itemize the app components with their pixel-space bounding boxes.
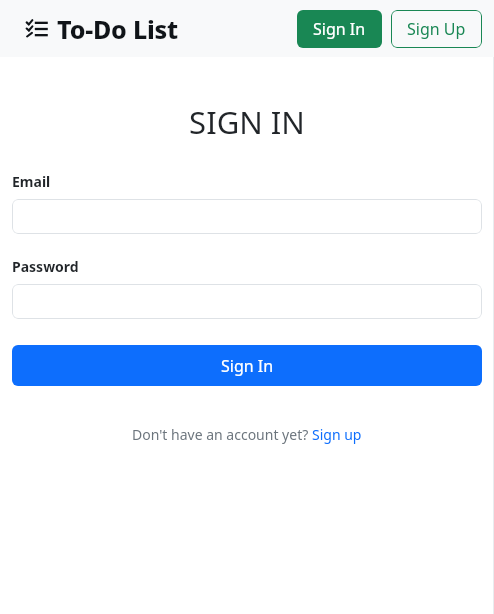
staticText: Sign up [312,425,362,444]
button[interactable]: To-Do List [26,12,179,46]
button[interactable]: Sign Up [391,10,482,48]
staticText: Password [12,257,79,276]
staticText: SIGN IN [12,101,482,143]
button[interactable] [12,199,482,234]
staticText: Email [12,172,51,191]
button[interactable]: Sign up [312,425,362,444]
button[interactable] [12,284,482,319]
staticText: Sign In [221,355,274,377]
staticText: Sign Up [407,18,466,40]
staticText: Sign In [313,18,366,40]
staticText: Don't have an account yet? [132,425,312,444]
staticText: To-Do List [57,12,179,46]
button[interactable]: Sign In [297,10,382,48]
button[interactable]: Sign In [12,345,482,386]
other: To-Do List [26,18,48,40]
